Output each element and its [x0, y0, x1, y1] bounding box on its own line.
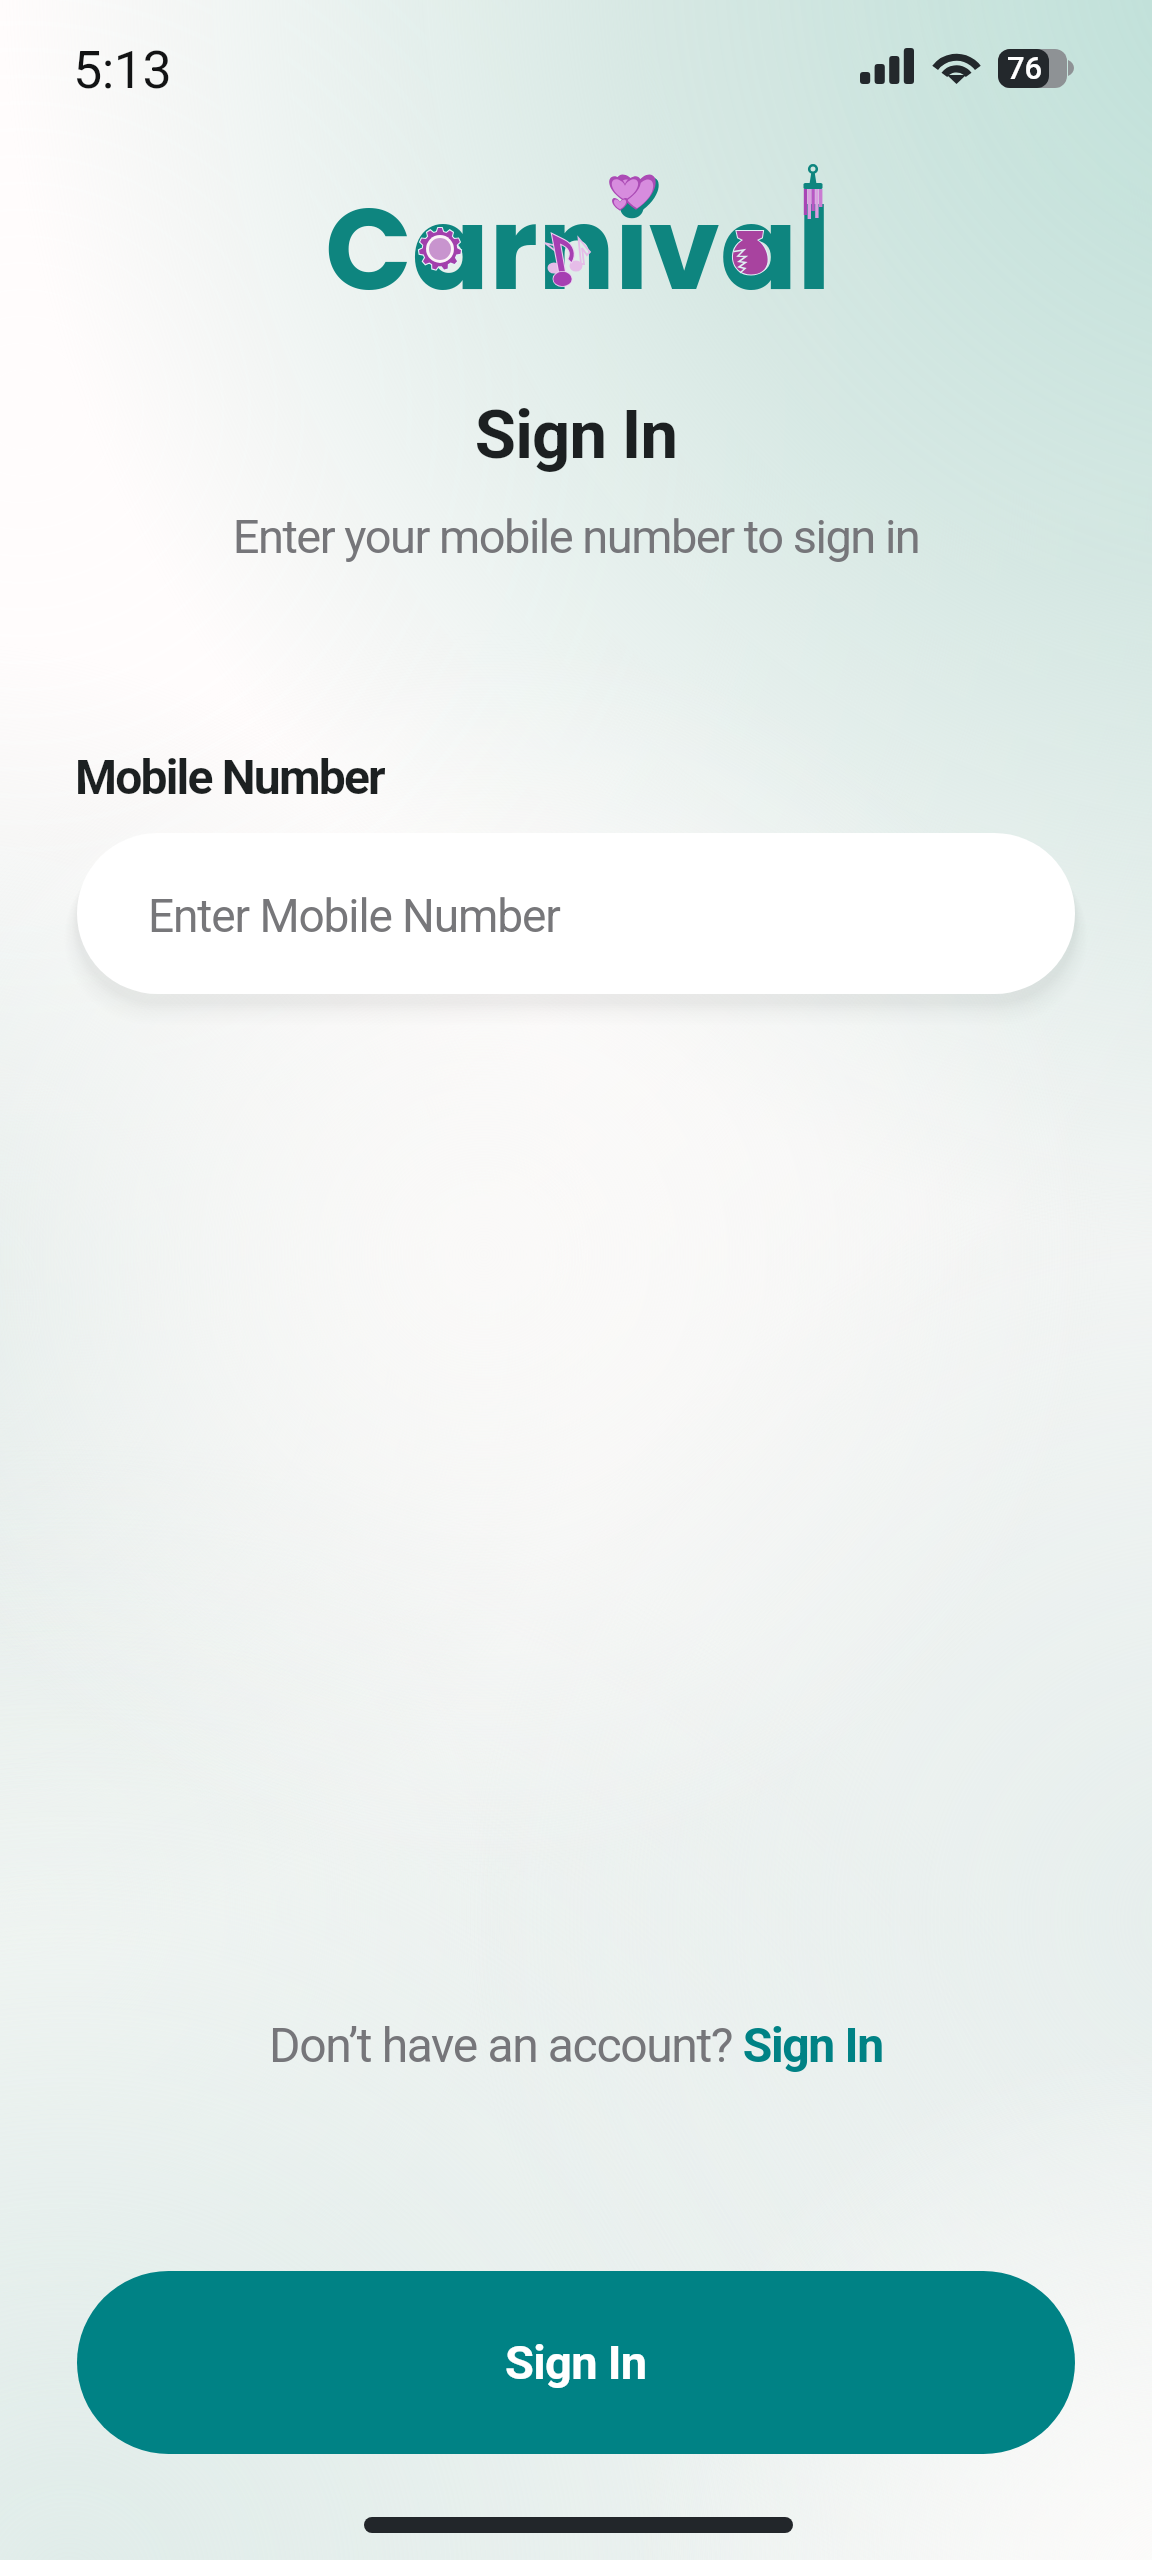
- staticText: Enter Mobile Number: [148, 889, 560, 943]
- button[interactable]: Don’t have an account? Sign In: [245, 1999, 907, 2091]
- staticText: Don’t have an account? Sign In: [269, 2017, 883, 2073]
- staticText: 5:13: [73, 40, 172, 101]
- other: Carnival: [0, 0, 1152, 330]
- staticText: Sign In: [0, 396, 1152, 475]
- button[interactable]: Sign In: [77, 2271, 1075, 2454]
- staticText: 76: [1007, 50, 1043, 86]
- staticText: Mobile Number: [75, 749, 384, 805]
- staticText: Sign In: [505, 2335, 647, 2390]
- button[interactable]: Enter Mobile Number: [77, 833, 1075, 994]
- staticText: Enter your mobile number to sign in: [0, 509, 1152, 564]
- staticText: Carnival: [325, 169, 831, 329]
